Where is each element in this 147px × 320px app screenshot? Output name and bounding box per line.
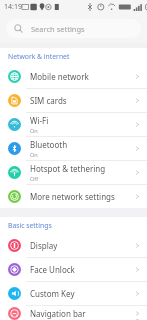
staticText: Mobile network [30, 71, 89, 82]
staticText: Basic settings [8, 221, 52, 230]
button[interactable]: More network settings [0, 185, 147, 208]
button[interactable]: Navigation bar [0, 306, 147, 320]
staticText: Navigation bar [30, 308, 86, 319]
staticText: Search settings [31, 24, 85, 34]
staticText: SIM cards [30, 95, 67, 106]
staticText: On [30, 127, 38, 135]
staticText: 14:19 [4, 2, 22, 12]
staticText: Network & internet [8, 52, 70, 61]
button[interactable]: Face Unlock [0, 258, 147, 281]
button[interactable]: Custom Key [0, 282, 147, 305]
button[interactable]: SIM cards [0, 89, 147, 112]
staticText: Bluetooth [30, 139, 68, 150]
staticText: Off [30, 175, 39, 183]
staticText: Custom Key [30, 288, 75, 299]
staticText: Wi-Fi [30, 115, 49, 126]
staticText: On [30, 151, 38, 159]
staticText: More network settings [30, 191, 115, 202]
button[interactable]: Search settings [6, 19, 141, 38]
staticText: Face Unlock [30, 264, 75, 275]
button[interactable]: Display [0, 234, 147, 257]
button[interactable]: Bluetooth [0, 137, 147, 160]
staticText: Display [30, 240, 58, 251]
button[interactable]: Hotspot & tethering [0, 161, 147, 184]
staticText: Hotspot & tethering [30, 163, 106, 174]
button[interactable]: Mobile network [0, 65, 147, 88]
button[interactable]: Wi-Fi [0, 113, 147, 136]
